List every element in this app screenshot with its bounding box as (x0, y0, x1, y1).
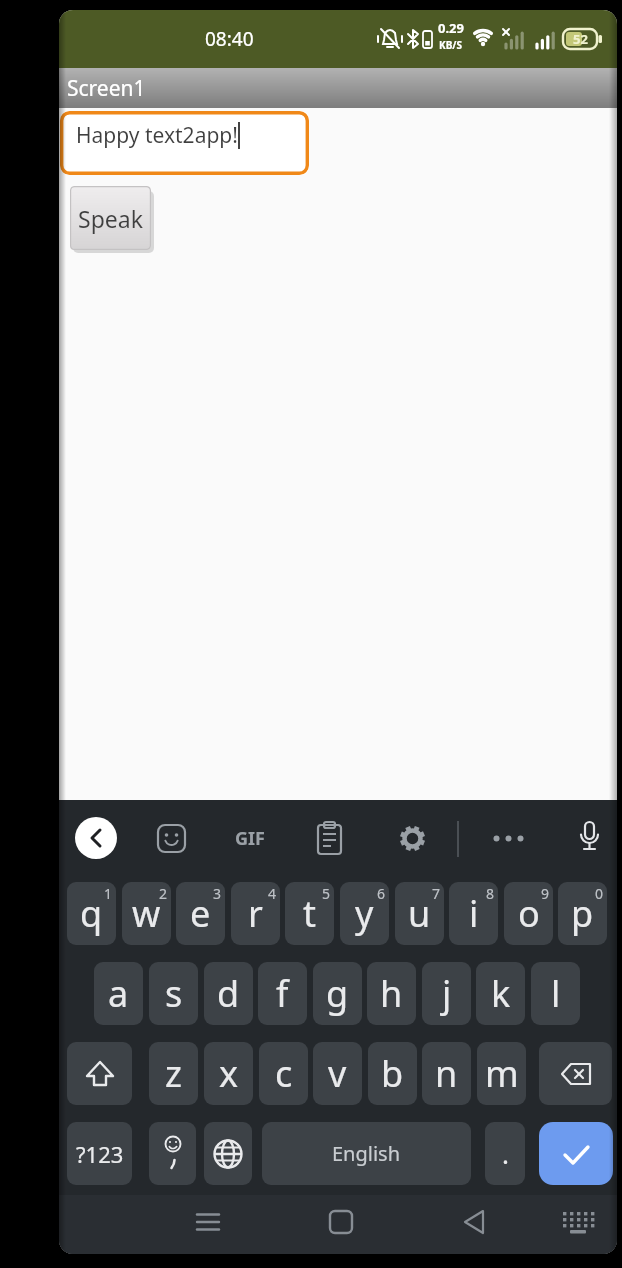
button[interactable] (539, 1122, 613, 1185)
staticText: 08:40 (205, 26, 254, 52)
staticText: GIF (235, 826, 265, 851)
button[interactable] (392, 818, 433, 859)
button[interactable]: ?123 (67, 1122, 132, 1185)
staticText: 7 (432, 884, 441, 903)
button[interactable]: w (122, 882, 171, 945)
button[interactable]: i (449, 882, 498, 945)
button[interactable] (67, 1042, 132, 1105)
staticText: y (355, 889, 374, 938)
button[interactable]: f (258, 962, 307, 1025)
button[interactable]: p (558, 882, 607, 945)
staticText: g (326, 969, 349, 1018)
staticText: 9 (541, 884, 550, 903)
button[interactable] (75, 817, 117, 859)
staticText: j (442, 969, 452, 1018)
button[interactable]: c (259, 1042, 308, 1105)
staticText: u (408, 889, 431, 938)
button[interactable]: b (368, 1042, 417, 1105)
staticText: 5 (322, 884, 331, 903)
staticText: h (380, 969, 403, 1018)
staticText: o (518, 889, 540, 938)
staticText: 3 (213, 884, 222, 903)
button[interactable] (309, 818, 350, 859)
staticText: d (217, 969, 240, 1018)
staticText: . (502, 1136, 509, 1171)
staticText: 2 (159, 884, 168, 903)
staticText: Happy text2app! (76, 121, 238, 150)
button[interactable]: u (395, 882, 444, 945)
staticText: e (190, 889, 211, 938)
staticText: p (571, 889, 594, 938)
button[interactable]: y (340, 882, 389, 945)
button[interactable] (488, 818, 529, 859)
button[interactable] (149, 1122, 196, 1185)
staticText: English (332, 1140, 401, 1167)
staticText: 1 (104, 884, 113, 903)
button[interactable]: k (476, 962, 525, 1025)
staticText: w (132, 889, 161, 938)
staticText: 0 (595, 884, 604, 903)
button[interactable] (569, 818, 610, 859)
staticText: 0.29 (438, 19, 464, 37)
button[interactable]: o (504, 882, 553, 945)
button[interactable]: English (262, 1122, 471, 1185)
button[interactable]: q (67, 882, 116, 945)
staticText: z (165, 1049, 182, 1098)
staticText: t (303, 889, 316, 938)
button[interactable]: n (422, 1042, 471, 1105)
staticText: 4 (268, 884, 277, 903)
button[interactable] (151, 818, 192, 859)
staticText: q (80, 889, 103, 938)
staticText: c (275, 1049, 293, 1098)
staticText: Speak (78, 203, 143, 234)
button[interactable]: d (204, 962, 253, 1025)
button[interactable]: h (367, 962, 416, 1025)
button[interactable]: t (285, 882, 334, 945)
staticText: v (328, 1049, 347, 1098)
staticText: b (381, 1049, 404, 1098)
button[interactable]: m (477, 1042, 526, 1105)
button[interactable]: s (149, 962, 198, 1025)
button[interactable]: e (176, 882, 225, 945)
staticText: l (551, 969, 561, 1018)
button[interactable]: g (313, 962, 362, 1025)
staticText: 8 (486, 884, 495, 903)
staticText: i (469, 889, 479, 938)
staticText: 52 (573, 30, 588, 48)
button[interactable]: z (149, 1042, 198, 1105)
button[interactable]: Happy text2app! (60, 111, 309, 175)
button[interactable]: . (485, 1122, 525, 1185)
staticText: s (165, 969, 183, 1018)
staticText: 6 (377, 884, 386, 903)
button[interactable]: l (531, 962, 580, 1025)
staticText: ?123 (76, 1139, 124, 1169)
button[interactable]: x (204, 1042, 253, 1105)
button[interactable]: a (94, 962, 143, 1025)
button[interactable]: j (422, 962, 471, 1025)
staticText: r (248, 889, 263, 938)
button[interactable]: Speak (70, 186, 151, 250)
staticText: m (485, 1049, 519, 1098)
button[interactable] (204, 1122, 252, 1185)
staticText: KB/S (439, 38, 462, 52)
staticText: Screen1 (67, 74, 146, 103)
button[interactable] (539, 1042, 612, 1105)
staticText: k (491, 969, 511, 1018)
button[interactable]: v (313, 1042, 362, 1105)
staticText: f (276, 969, 289, 1018)
button[interactable]: r (231, 882, 280, 945)
staticText: x (219, 1049, 239, 1098)
staticText: n (435, 1049, 458, 1098)
staticText: a (108, 969, 129, 1018)
